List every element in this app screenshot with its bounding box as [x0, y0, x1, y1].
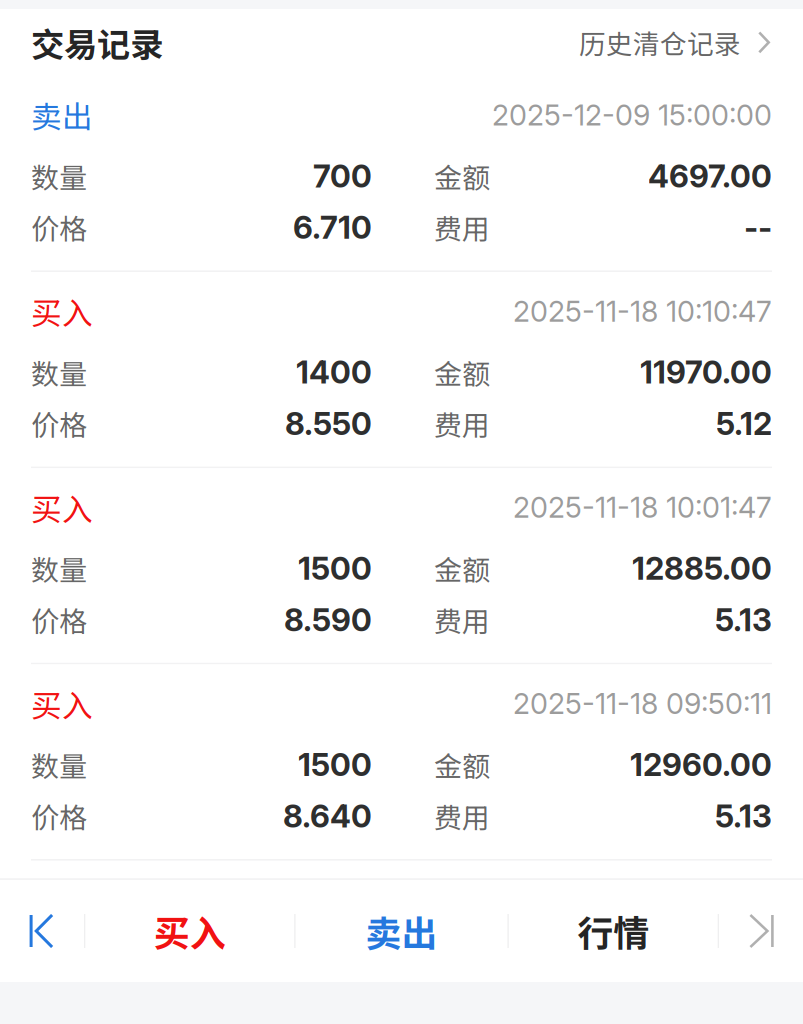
staticText: 买入 [31, 289, 93, 333]
staticText: 1500 [298, 549, 372, 587]
staticText: 价格 [31, 207, 87, 248]
button[interactable]: 卖出 [295, 880, 507, 982]
staticText: 费用 [434, 403, 490, 444]
staticText: 2025-11-18 10:01:47 [513, 490, 772, 525]
staticText: 6.710 [293, 208, 372, 246]
staticText: 2025-11-18 09:50:11 [513, 686, 772, 721]
staticText: 5.12 [716, 405, 772, 442]
staticText: 数量 [31, 352, 87, 392]
staticText: 12885.00 [632, 549, 772, 587]
staticText: 金额 [434, 548, 490, 589]
staticText: 5.13 [715, 601, 772, 639]
button[interactable]: 历史清仓记录 [579, 23, 772, 62]
staticText: 价格 [31, 796, 87, 836]
staticText: 买入 [31, 485, 93, 530]
staticText: 买入 [31, 681, 93, 726]
staticText: 金额 [434, 352, 490, 392]
staticText: 8.640 [283, 797, 372, 835]
staticText: 金额 [434, 744, 490, 785]
staticText: 费用 [434, 599, 490, 640]
staticText: 价格 [31, 599, 87, 640]
staticText: -- [744, 208, 772, 246]
staticText: 11970.00 [640, 353, 772, 391]
staticText: 历史清仓记录 [579, 23, 741, 62]
staticText: 价格 [31, 403, 87, 444]
staticText: 行情 [577, 905, 649, 957]
staticText: 费用 [434, 796, 490, 836]
staticText: 2025-12-09 15:00:00 [492, 98, 772, 132]
button[interactable]: First page [0, 880, 84, 982]
button[interactable]: 买入 [85, 880, 294, 982]
button[interactable]: Last page [719, 880, 803, 982]
staticText: 交易记录 [31, 18, 163, 67]
staticText: 1500 [298, 746, 372, 783]
staticText: 费用 [434, 207, 490, 248]
button[interactable]: 行情 [509, 880, 718, 982]
staticText: 卖出 [365, 905, 437, 957]
staticText: 4697.00 [648, 157, 772, 195]
staticText: 8.590 [284, 601, 372, 639]
staticText: 8.550 [285, 405, 372, 442]
staticText: 2025-11-18 10:10:47 [513, 294, 772, 329]
staticText: 5.13 [715, 797, 772, 835]
staticText: 700 [313, 157, 372, 195]
staticText: 12960.00 [630, 746, 772, 783]
staticText: 买入 [154, 905, 226, 957]
staticText: 数量 [31, 156, 87, 196]
staticText: 卖出 [31, 93, 93, 137]
staticText: 1400 [296, 353, 372, 391]
staticText: 金额 [434, 156, 490, 196]
staticText: 数量 [31, 744, 87, 785]
staticText: 数量 [31, 548, 87, 589]
